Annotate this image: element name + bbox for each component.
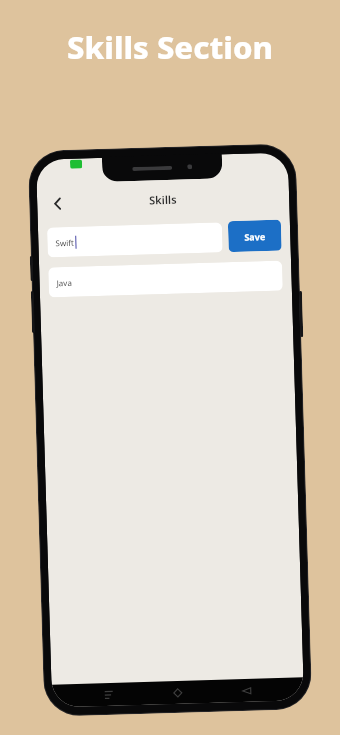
button[interactable]: Java [48,261,283,297]
staticText: Skills Section [67,26,273,68]
button[interactable]: Back [42,188,73,219]
button[interactable]: Save [228,220,282,252]
staticText: Java [56,277,73,288]
staticText: Save [244,230,265,243]
staticText: Swift [55,237,74,248]
staticText: Skills [149,192,177,207]
button[interactable]: Recents [96,683,121,706]
button[interactable]: Swift [47,222,223,258]
button[interactable]: Home [165,680,190,704]
button[interactable]: Back [234,678,259,702]
